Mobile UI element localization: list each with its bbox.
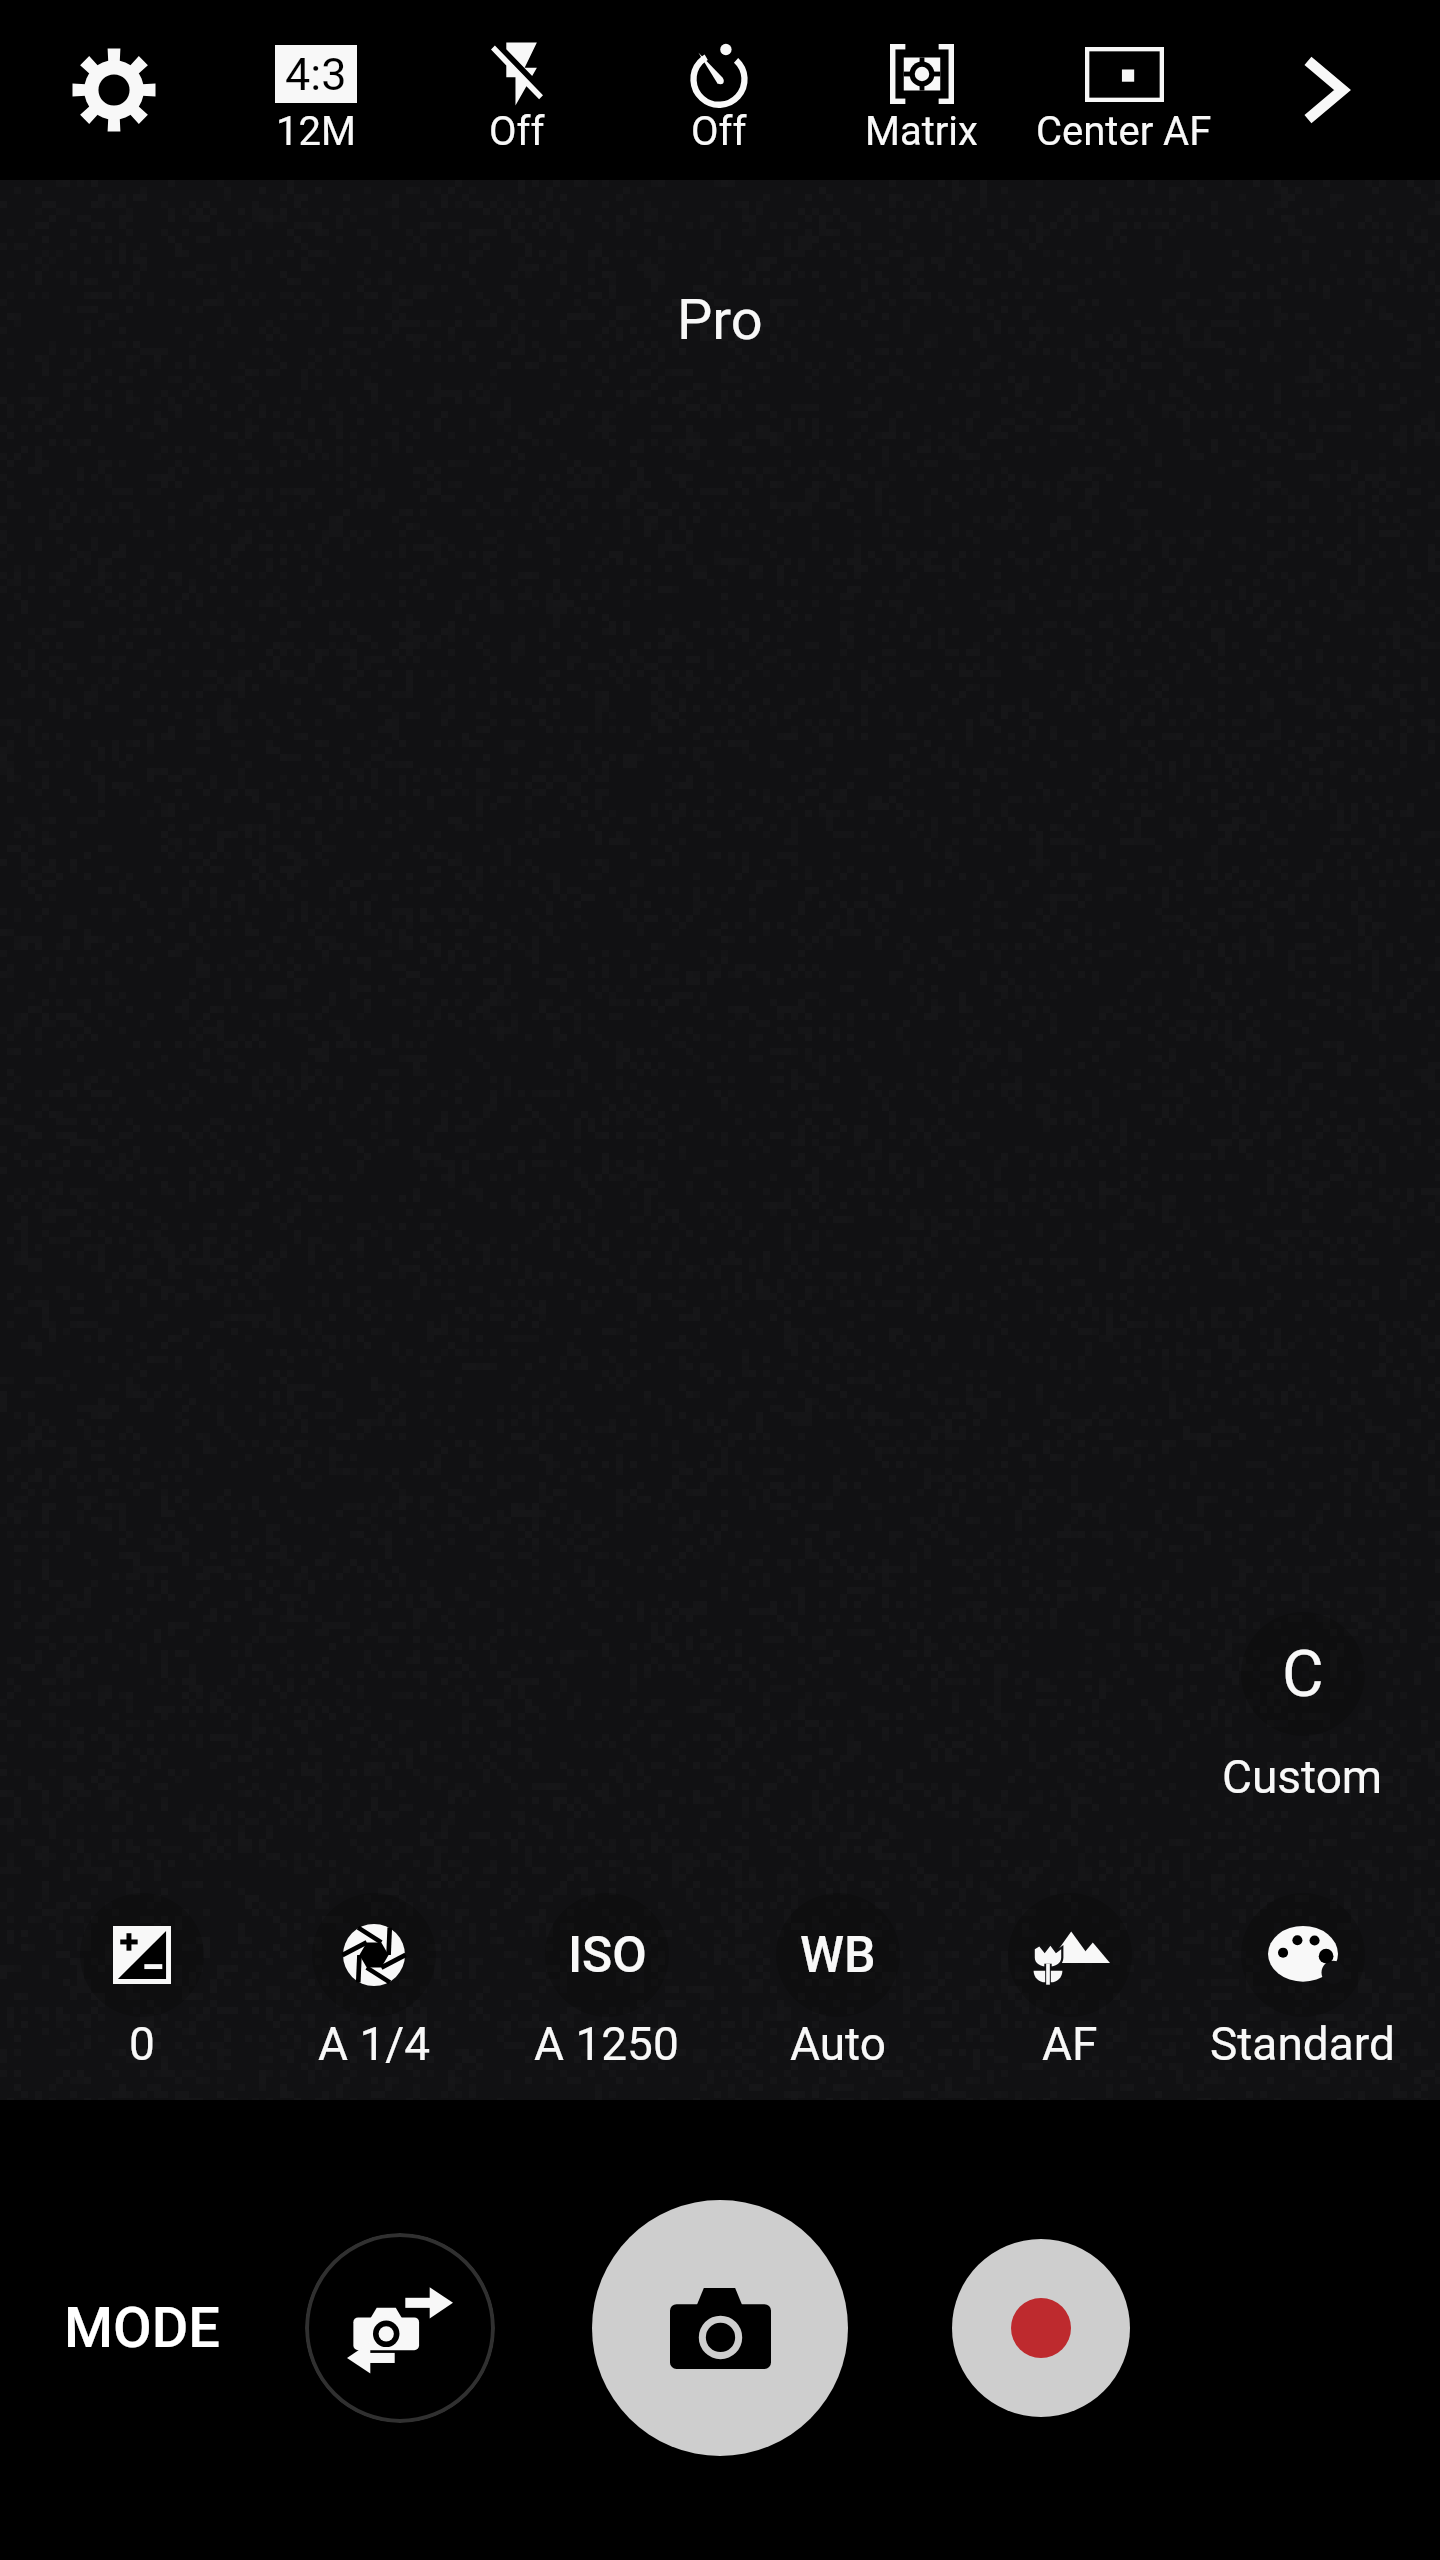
staticText: ISO (568, 1926, 647, 1985)
button[interactable]: Off (675, 40, 763, 157)
staticText: 12M (276, 108, 356, 155)
button[interactable]: Center AF (1022, 40, 1226, 157)
staticText: Pro (677, 287, 763, 353)
staticText: 4:3 (285, 48, 347, 101)
staticText: A 1/4 (318, 2017, 431, 2071)
button[interactable]: Switch camera (305, 2233, 495, 2423)
staticText: C (1282, 1637, 1324, 1712)
staticText: Auto (790, 2017, 886, 2071)
button[interactable]: MODE (44, 2281, 240, 2375)
staticText: Off (691, 108, 747, 155)
button[interactable]: Off (475, 40, 559, 157)
staticText: AF (1042, 2017, 1098, 2071)
button[interactable]: Record video (952, 2239, 1130, 2417)
button[interactable]: Take photo (592, 2200, 848, 2456)
staticText: A 1250 (534, 2017, 679, 2071)
button[interactable]: Matrix (851, 40, 992, 157)
button[interactable]: 4:3 (261, 40, 371, 157)
button[interactable]: AF (994, 1889, 1146, 2075)
staticText: Off (489, 108, 545, 155)
staticText: Matrix (865, 108, 978, 155)
staticText: Custom (1222, 1750, 1383, 1804)
button[interactable]: Standard (1196, 1889, 1409, 2075)
button[interactable]: More options (1250, 15, 1400, 165)
button[interactable]: A 1/4 (298, 1889, 450, 2075)
staticText: MODE (64, 2295, 220, 2361)
button[interactable]: ISO (520, 1889, 693, 2075)
button[interactable]: 0 (66, 1889, 218, 2075)
staticText: WB (800, 1926, 876, 1985)
button[interactable]: Custom settings (1212, 1606, 1393, 1810)
button[interactable]: Settings (39, 15, 189, 165)
staticText: Center AF (1036, 108, 1212, 155)
staticText: Standard (1210, 2017, 1395, 2071)
staticText: 0 (129, 2017, 155, 2071)
button[interactable]: WB (762, 1889, 914, 2075)
